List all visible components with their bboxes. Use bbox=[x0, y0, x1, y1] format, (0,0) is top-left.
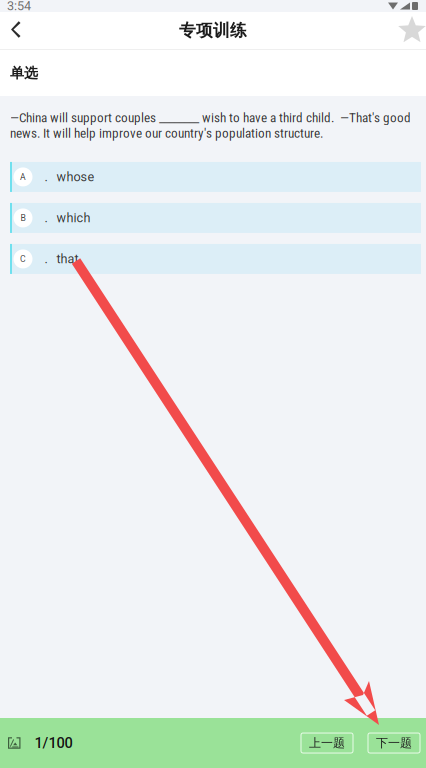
staticText: A bbox=[20, 172, 26, 182]
staticText: 3:54 bbox=[7, 0, 31, 13]
button[interactable]: 下一题 bbox=[368, 733, 420, 753]
button[interactable]: Favorite bbox=[392, 16, 426, 44]
staticText: that bbox=[56, 251, 78, 266]
staticText: 1/100 bbox=[34, 734, 72, 752]
button[interactable]: 上一题 bbox=[301, 733, 353, 753]
staticText: 上一题 bbox=[309, 735, 345, 750]
button[interactable]: B bbox=[10, 203, 421, 233]
button[interactable]: A bbox=[10, 162, 421, 192]
staticText: 专项训练 bbox=[179, 20, 247, 41]
staticText: 单选 bbox=[10, 64, 38, 82]
staticText: . bbox=[44, 210, 47, 225]
staticText: B bbox=[20, 213, 25, 223]
staticText: C bbox=[20, 254, 26, 264]
staticText: . bbox=[44, 251, 47, 266]
staticText: 下一题 bbox=[376, 735, 412, 750]
button[interactable]: Back bbox=[0, 13, 35, 48]
button[interactable]: C bbox=[10, 244, 421, 274]
staticText: whose bbox=[56, 169, 94, 184]
staticText: . bbox=[44, 169, 47, 184]
staticText: which bbox=[56, 210, 90, 225]
staticText: —China will support couples ________ wis… bbox=[10, 110, 411, 141]
button[interactable]: 1/100 bbox=[0, 726, 72, 760]
